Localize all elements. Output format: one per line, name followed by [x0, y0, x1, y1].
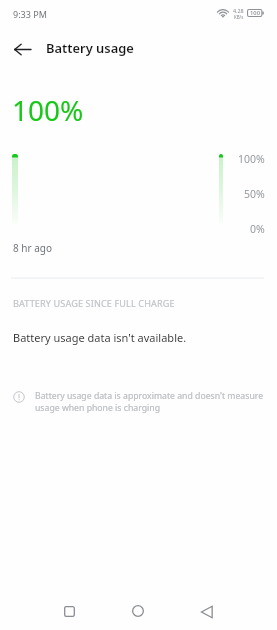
staticText: 50%	[244, 187, 265, 201]
staticText: BATTERY USAGE SINCE FULL CHARGE	[13, 297, 175, 309]
button[interactable]: Back	[8, 35, 37, 64]
staticText: 0%	[250, 222, 265, 236]
staticText: Battery usage data isn't available.	[13, 330, 187, 345]
staticText: 100	[250, 9, 260, 17]
staticText: Battery usage	[46, 39, 134, 57]
staticText: 9:33 PM	[13, 8, 47, 20]
staticText: KB/s	[234, 14, 244, 20]
staticText: 8 hr ago	[13, 241, 53, 255]
staticText: 100%	[238, 152, 265, 166]
staticText: Battery usage data is approximate and do…	[35, 390, 267, 413]
staticText: 4.28	[233, 7, 244, 14]
button[interactable]: Back	[186, 591, 228, 630]
staticText: 100%	[12, 91, 84, 129]
button[interactable]: Home	[117, 590, 159, 630]
button[interactable]: Recents	[48, 590, 90, 630]
